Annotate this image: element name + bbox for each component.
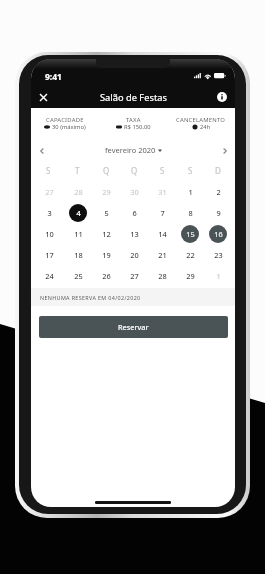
staticText: 19 [102, 250, 111, 260]
button[interactable]: 10 [40, 225, 58, 243]
staticText: 12 [102, 229, 111, 239]
button[interactable]: 1 [209, 267, 227, 285]
staticText: 21 [158, 250, 167, 260]
staticText: 16 [214, 229, 223, 239]
staticText: 28 [74, 187, 83, 197]
button[interactable]: 22 [181, 246, 199, 264]
button[interactable]: 21 [153, 246, 171, 264]
staticText: S [46, 165, 51, 176]
staticText: R$ 150,00 [124, 123, 151, 131]
button[interactable]: 2 [209, 183, 227, 201]
button[interactable]: 9 [209, 204, 227, 222]
staticText: 23 [214, 250, 223, 260]
staticText: S [188, 165, 193, 176]
staticText: 11 [74, 229, 83, 239]
staticText: 28 [158, 271, 167, 281]
button[interactable]: 29 [181, 267, 199, 285]
button[interactable]: 17 [40, 246, 58, 264]
staticText: 17 [45, 250, 54, 260]
staticText: 13 [130, 229, 139, 239]
button[interactable]: 14 [153, 225, 171, 243]
staticText: Q [103, 165, 110, 176]
staticText: TAXA [126, 116, 141, 124]
button[interactable]: 15 [181, 225, 199, 243]
staticText: CANCELAMENTO [176, 116, 226, 124]
staticText: 7 [160, 208, 165, 218]
button[interactable]: 28 [69, 183, 87, 201]
button[interactable]: 1 [181, 183, 199, 201]
button[interactable]: 7 [153, 204, 171, 222]
staticText: 3 [47, 208, 52, 218]
staticText: 24h [200, 123, 211, 131]
staticText: 30 (máximo) [52, 123, 86, 131]
staticText: 24 [45, 271, 54, 281]
staticText: 25 [74, 271, 83, 281]
staticText: Reservar [118, 322, 149, 332]
button[interactable]: 25 [69, 267, 87, 285]
staticText: 5 [104, 208, 109, 218]
button[interactable]: 8 [181, 204, 199, 222]
button[interactable]: 23 [209, 246, 227, 264]
button[interactable]: 5 [97, 204, 115, 222]
staticText: 1 [188, 187, 193, 197]
staticText: T [75, 165, 80, 176]
button[interactable]: 19 [97, 246, 115, 264]
button[interactable]: 16 [209, 225, 227, 243]
button[interactable]: 12 [97, 225, 115, 243]
button[interactable]: 26 [97, 267, 115, 285]
staticText: 26 [102, 271, 111, 281]
button[interactable]: Fechar [35, 89, 52, 106]
staticText: CAPACIDADE [46, 116, 84, 124]
staticText: 4 [76, 208, 81, 218]
button[interactable]: 27 [40, 183, 58, 201]
staticText: 20 [130, 250, 139, 260]
button[interactable]: Mês anterior [34, 143, 49, 158]
button[interactable]: 27 [125, 267, 143, 285]
button[interactable]: 6 [125, 204, 143, 222]
staticText: 27 [45, 187, 54, 197]
button[interactable]: 3 [40, 204, 58, 222]
staticText: S [160, 165, 165, 176]
button[interactable]: 30 [125, 183, 143, 201]
button[interactable]: 13 [125, 225, 143, 243]
staticText: NENHUMA RESERVA EM 04/02/2020 [40, 294, 141, 301]
staticText: 29 [186, 271, 195, 281]
staticText: fevereiro 2020 [105, 145, 156, 155]
staticText: Q [131, 165, 138, 176]
staticText: D [215, 165, 221, 176]
staticText: 9:41 [45, 71, 62, 83]
staticText: Salão de Festas [100, 91, 167, 104]
staticText: 9 [216, 208, 221, 218]
staticText: 18 [74, 250, 83, 260]
button[interactable]: 24 [40, 267, 58, 285]
staticText: 6 [132, 208, 137, 218]
button[interactable]: 28 [153, 267, 171, 285]
staticText: 29 [102, 187, 111, 197]
staticText: 1 [216, 271, 221, 281]
staticText: 2 [216, 187, 221, 197]
staticText: 22 [186, 250, 195, 260]
button[interactable]: 11 [69, 225, 87, 243]
staticText: 30 [130, 187, 139, 197]
button[interactable]: Informações [214, 89, 230, 105]
button[interactable]: 4 [69, 204, 87, 222]
button[interactable]: 20 [125, 246, 143, 264]
staticText: 27 [130, 271, 139, 281]
button[interactable]: 18 [69, 246, 87, 264]
button[interactable]: 29 [97, 183, 115, 201]
staticText: 8 [188, 208, 193, 218]
button[interactable]: Próximo mês [217, 143, 232, 158]
staticText: 31 [158, 187, 167, 197]
staticText: 14 [158, 229, 167, 239]
staticText: 15 [186, 229, 195, 239]
button[interactable]: 31 [153, 183, 171, 201]
button[interactable]: Reservar [39, 316, 228, 338]
staticText: 10 [45, 229, 54, 239]
